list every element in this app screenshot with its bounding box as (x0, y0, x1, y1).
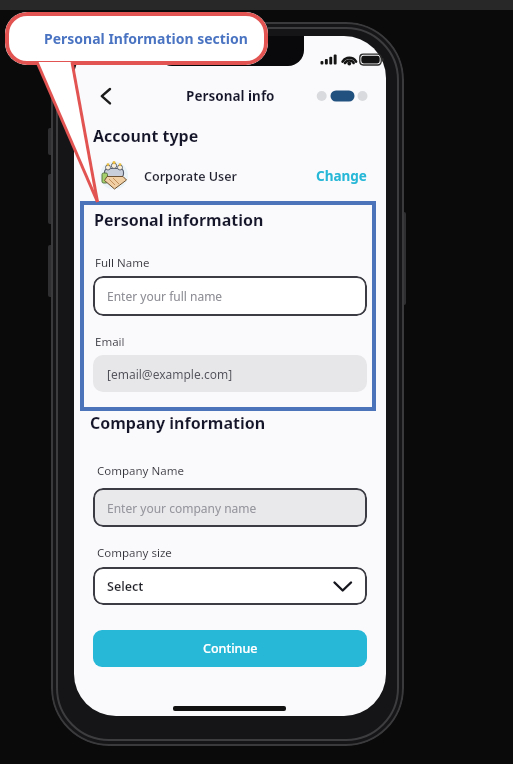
staticText: Enter your full name (107, 288, 223, 304)
staticText: Select (107, 578, 144, 595)
staticText: Company Name (97, 463, 184, 479)
staticText: Company information (90, 412, 266, 434)
staticText: Company size (97, 545, 172, 561)
staticText: Personal information (94, 209, 264, 231)
staticText: [email@example.com] (107, 366, 233, 382)
staticText: Change (316, 167, 367, 185)
staticText: Continue (203, 640, 258, 657)
staticText: Personal info (186, 87, 275, 105)
staticText: Corporate User (144, 168, 238, 185)
staticText: Personal Information section (44, 29, 248, 48)
staticText: Email (95, 334, 125, 350)
staticText: Enter your company name (107, 500, 257, 516)
staticText: Account type (93, 125, 199, 147)
staticText: Full Name (95, 255, 150, 271)
